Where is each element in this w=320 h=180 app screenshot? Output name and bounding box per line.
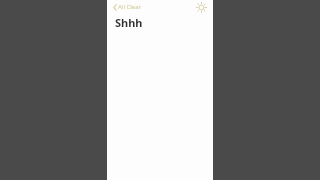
button[interactable]: Settings <box>196 2 207 13</box>
staticText: All Clear <box>118 3 142 11</box>
staticText: Shhh <box>115 15 143 30</box>
button[interactable]: All Clear <box>112 2 143 12</box>
